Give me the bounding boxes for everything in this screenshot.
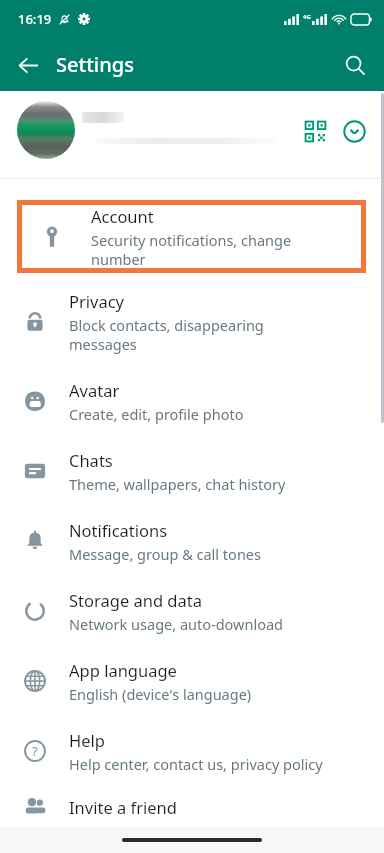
staticText: Security notifications, change number: [91, 230, 349, 268]
staticText: Settings: [56, 51, 134, 78]
button[interactable]: Privacy: [0, 278, 384, 366]
staticText: Storage and data: [69, 589, 202, 611]
staticText: Notifications: [69, 519, 168, 541]
staticText: Account: [91, 205, 154, 227]
staticText: Network usage, auto-download: [69, 614, 283, 634]
staticText: Chats: [69, 449, 113, 471]
button[interactable]: Account: [22, 205, 361, 268]
button[interactable]: Chats: [0, 436, 384, 506]
button[interactable]: Expand profile: [337, 114, 371, 148]
button[interactable]: Storage and data: [0, 576, 384, 646]
staticText: Theme, wallpapers, chat history: [69, 474, 286, 494]
button[interactable]: Avatar: [0, 366, 384, 436]
staticText: Invite a friend: [69, 796, 177, 818]
button[interactable]: Notifications: [0, 506, 384, 576]
button[interactable]: ?: [0, 716, 384, 786]
staticText: Help center, contact us, privacy policy: [69, 754, 323, 774]
staticText: App language: [69, 659, 177, 681]
staticText: Privacy: [69, 290, 125, 312]
button[interactable]: QR code: [0, 91, 384, 179]
staticText: English (device's language): [69, 684, 252, 704]
button[interactable]: Invite a friend: [0, 786, 384, 827]
button[interactable]: App language: [0, 646, 384, 716]
staticText: ?: [32, 742, 38, 760]
staticText: Block contacts, disappearing messages: [69, 315, 264, 354]
button[interactable]: QR code: [298, 114, 332, 148]
button[interactable]: Back: [6, 43, 50, 87]
button[interactable]: Search: [333, 43, 377, 87]
staticText: Message, group & call tones: [69, 544, 261, 564]
staticText: 16:19: [18, 10, 52, 28]
staticText: Avatar: [69, 379, 120, 401]
staticText: Create, edit, profile photo: [69, 404, 244, 424]
staticText: 4G: [303, 13, 311, 21]
staticText: Help: [69, 729, 105, 751]
